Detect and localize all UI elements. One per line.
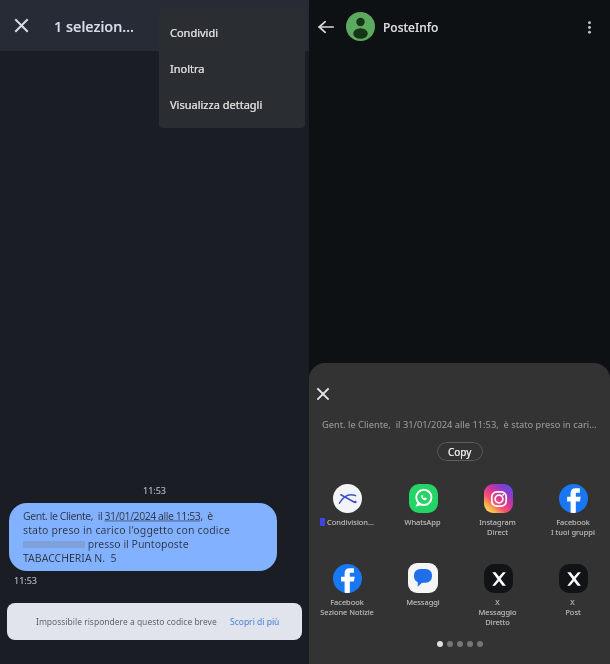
staticText: 11:53 bbox=[14, 574, 38, 586]
staticText: Post bbox=[565, 607, 581, 617]
button[interactable]: Condividi bbox=[159, 14, 305, 50]
button[interactable]: X bbox=[535, 563, 610, 617]
staticText: Instagram bbox=[479, 517, 516, 527]
button[interactable]: Altre opzioni bbox=[576, 14, 602, 40]
staticText: Facebook bbox=[556, 517, 590, 527]
staticText: Copy bbox=[448, 445, 472, 459]
button[interactable]: Facebook bbox=[309, 563, 385, 617]
button[interactable]: Condivision… bbox=[309, 483, 385, 527]
button[interactable]: Impossibile rispondere a questo codice b… bbox=[7, 603, 302, 640]
staticText: Messaggio Diretto bbox=[478, 607, 517, 627]
staticText: 11:53 bbox=[0, 484, 309, 496]
staticText: WhatsApp bbox=[404, 517, 441, 527]
button[interactable]: Gent. le Cliente, il 31/01/2024 alle 11:… bbox=[9, 503, 277, 571]
button[interactable]: Inoltra bbox=[159, 50, 305, 86]
button[interactable]: Facebook bbox=[535, 483, 610, 537]
button[interactable]: Chiudi condivisione bbox=[311, 382, 335, 406]
staticText: Gent. le Cliente, il 31/01/2024 alle 11:… bbox=[322, 418, 597, 431]
button[interactable]: X bbox=[460, 563, 535, 627]
staticText: stato preso in carico l'oggetto con codi… bbox=[23, 523, 230, 537]
staticText: Direct bbox=[487, 527, 508, 537]
button[interactable]: Instagram bbox=[460, 483, 535, 537]
button[interactable]: Chiudi bbox=[8, 12, 35, 39]
button[interactable]: WhatsApp bbox=[385, 483, 460, 527]
staticText: Visualizza dettagli bbox=[170, 97, 263, 112]
button[interactable]: Copy bbox=[437, 442, 483, 461]
staticText: Gent. le Cliente, il 31/01/2024 alle 11:… bbox=[23, 509, 213, 523]
staticText: Scopri di più bbox=[230, 616, 280, 628]
staticText: X bbox=[495, 597, 500, 607]
staticText: 1 selezion… bbox=[54, 16, 135, 36]
staticText: X bbox=[570, 597, 575, 607]
staticText: TABACCHERIA N. 5 bbox=[23, 551, 117, 565]
staticText: I tuoi gruppi bbox=[551, 527, 595, 537]
button[interactable]: Visualizza dettagli bbox=[159, 86, 305, 122]
button[interactable]: Indietro bbox=[312, 13, 340, 41]
staticText: Condividi bbox=[170, 25, 219, 40]
staticText: Impossibile rispondere a questo codice b… bbox=[36, 616, 217, 628]
staticText: PosteInfo bbox=[383, 19, 439, 35]
staticText: presso il Puntoposte bbox=[85, 537, 189, 551]
staticText: Inoltra bbox=[170, 61, 205, 76]
staticText: Messaggi bbox=[406, 597, 440, 607]
staticText: Condivision… bbox=[327, 517, 374, 527]
staticText: Sezione Notizie bbox=[320, 607, 374, 617]
button[interactable]: Messaggi bbox=[385, 563, 460, 607]
staticText: Facebook bbox=[330, 597, 364, 607]
